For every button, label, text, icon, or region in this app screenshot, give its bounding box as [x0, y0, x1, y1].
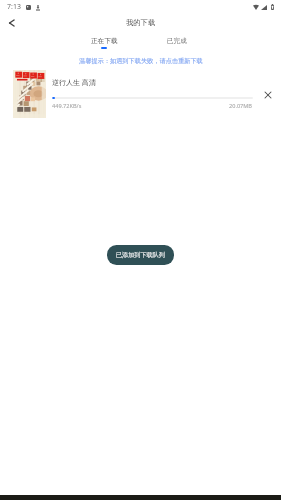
button[interactable]: Back: [0, 13, 22, 32]
button[interactable]: 已完成: [157, 37, 197, 45]
button[interactable]: Cancel download: [258, 85, 278, 105]
staticText: 温馨提示：如遇到下载失败，请点击重新下载: [79, 57, 203, 65]
button[interactable]: 正在下载: [84, 37, 124, 49]
staticText: 正在下载: [91, 37, 118, 45]
staticText: 我的下载: [126, 18, 156, 27]
button[interactable]: 已添加到下载队列: [107, 245, 174, 265]
staticText: 逆行人生 高清: [52, 78, 96, 88]
staticText: 20.07MB: [229, 102, 253, 110]
staticText: 已完成: [167, 37, 187, 45]
staticText: 449.72KB/s: [52, 102, 82, 110]
staticText: 已添加到下载队列: [116, 251, 165, 259]
button[interactable]: 逆行人生 高清: [0, 68, 281, 116]
staticText: 7:13: [7, 2, 21, 12]
